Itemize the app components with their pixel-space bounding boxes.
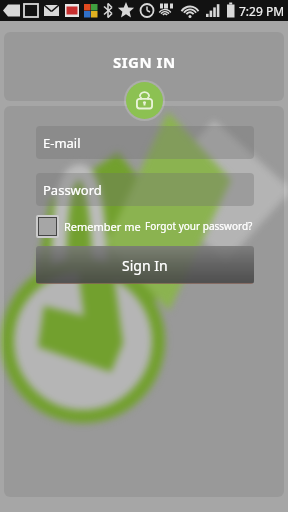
staticText: SIGN IN [113,52,176,72]
button[interactable]: Forgot your password? [145,219,253,233]
staticText: 7:29 PM [239,3,285,19]
button[interactable]: Remember me [64,219,141,234]
button[interactable]: Secure sign in [126,82,163,119]
staticText: Password [43,181,102,199]
staticText: Sign In [122,256,168,275]
button[interactable]: Sign In [36,246,254,284]
button[interactable]: Password [36,173,254,206]
staticText: E-mail [43,134,81,152]
button[interactable]: E-mail [36,126,254,159]
